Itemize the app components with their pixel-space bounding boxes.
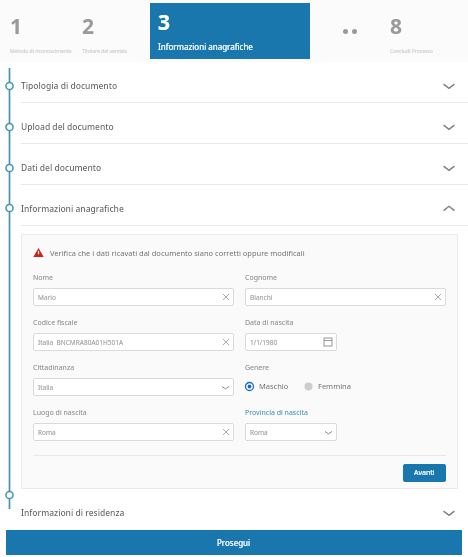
staticText: Verifica che i dati ricavati dal documen…: [50, 248, 305, 258]
staticText: Informazioni anagrafiche: [21, 203, 124, 215]
button[interactable]: 8: [390, 6, 460, 56]
button[interactable]: Avanti: [403, 464, 446, 482]
staticText: Data di nascita: [245, 318, 294, 328]
staticText: Metodo di riconoscimento: [10, 48, 72, 55]
staticText: Luogo di nascita: [33, 408, 87, 418]
other: Clear Codice fiscale: [223, 339, 229, 345]
staticText: Informazioni anagrafiche: [158, 41, 253, 52]
staticText: Avanti: [414, 468, 435, 478]
other: Clear Cognome: [435, 294, 441, 300]
staticText: 1: [10, 12, 23, 41]
other: Expand Informazioni di residenza: [441, 505, 457, 521]
button[interactable]: Maschio: [245, 381, 289, 391]
button[interactable]: Bianchi: [245, 288, 446, 306]
button[interactable]: Roma: [33, 423, 234, 441]
other: Clear Nome: [223, 294, 229, 300]
staticText: Mario: [38, 293, 56, 302]
button[interactable]: 1: [10, 6, 82, 56]
staticText: 3: [158, 8, 171, 37]
other: Expand Upload del documento: [441, 119, 457, 135]
staticText: Italia: [38, 383, 54, 392]
staticText: Informazioni di residenza: [21, 507, 125, 519]
button[interactable]: Informazioni anagrafiche: [0, 193, 468, 225]
staticText: Bianchi: [250, 293, 273, 302]
button[interactable]: 3: [150, 3, 310, 59]
button[interactable]: Femmina: [304, 381, 351, 391]
button[interactable]: Roma: [245, 423, 337, 441]
staticText: Roma: [38, 428, 56, 437]
staticText: Nome: [33, 273, 54, 283]
staticText: 2: [82, 12, 95, 41]
button[interactable]: 2: [82, 6, 150, 56]
other: Collapse Informazioni anagrafiche: [441, 201, 457, 217]
staticText: Maschio: [259, 381, 289, 391]
button[interactable]: Dati del documento: [0, 152, 468, 184]
staticText: Femmina: [318, 381, 351, 391]
button[interactable]: Tipologia di documento: [0, 70, 468, 102]
staticText: Dati del documento: [21, 162, 102, 174]
other: Expand Tipologia di documento: [441, 78, 457, 94]
staticText: 1/1/1980: [250, 338, 278, 347]
staticText: Italia BNCMRA80A01H501A: [38, 338, 124, 347]
button[interactable]: Italia BNCMRA80A01H501A: [33, 333, 234, 351]
staticText: Provincia di nascita: [245, 408, 308, 418]
button[interactable]: Italia: [33, 378, 234, 396]
staticText: Cognome: [245, 273, 278, 283]
staticText: 8: [390, 12, 403, 41]
button[interactable]: Prosegui: [6, 530, 462, 555]
staticText: Prosegui: [217, 537, 251, 548]
button[interactable]: 1/1/1980: [245, 333, 337, 351]
staticText: Cittadinanza: [33, 363, 75, 373]
button[interactable]: Informazioni di residenza: [0, 498, 468, 528]
staticText: Concludi Processo: [390, 48, 433, 55]
staticText: Codice fiscale: [33, 318, 78, 328]
staticText: Upload del documento: [21, 121, 114, 133]
other: Clear Luogo di nascita: [223, 429, 229, 435]
staticText: Tipologia di documento: [21, 80, 118, 92]
button[interactable]: Mario: [33, 288, 234, 306]
other: Pick date: [324, 338, 332, 346]
button[interactable]: Upload del documento: [0, 111, 468, 143]
staticText: Titolare del servizio: [82, 48, 128, 55]
staticText: Roma: [250, 428, 268, 437]
staticText: Genere: [245, 363, 270, 373]
other: Expand Dati del documento: [441, 160, 457, 176]
